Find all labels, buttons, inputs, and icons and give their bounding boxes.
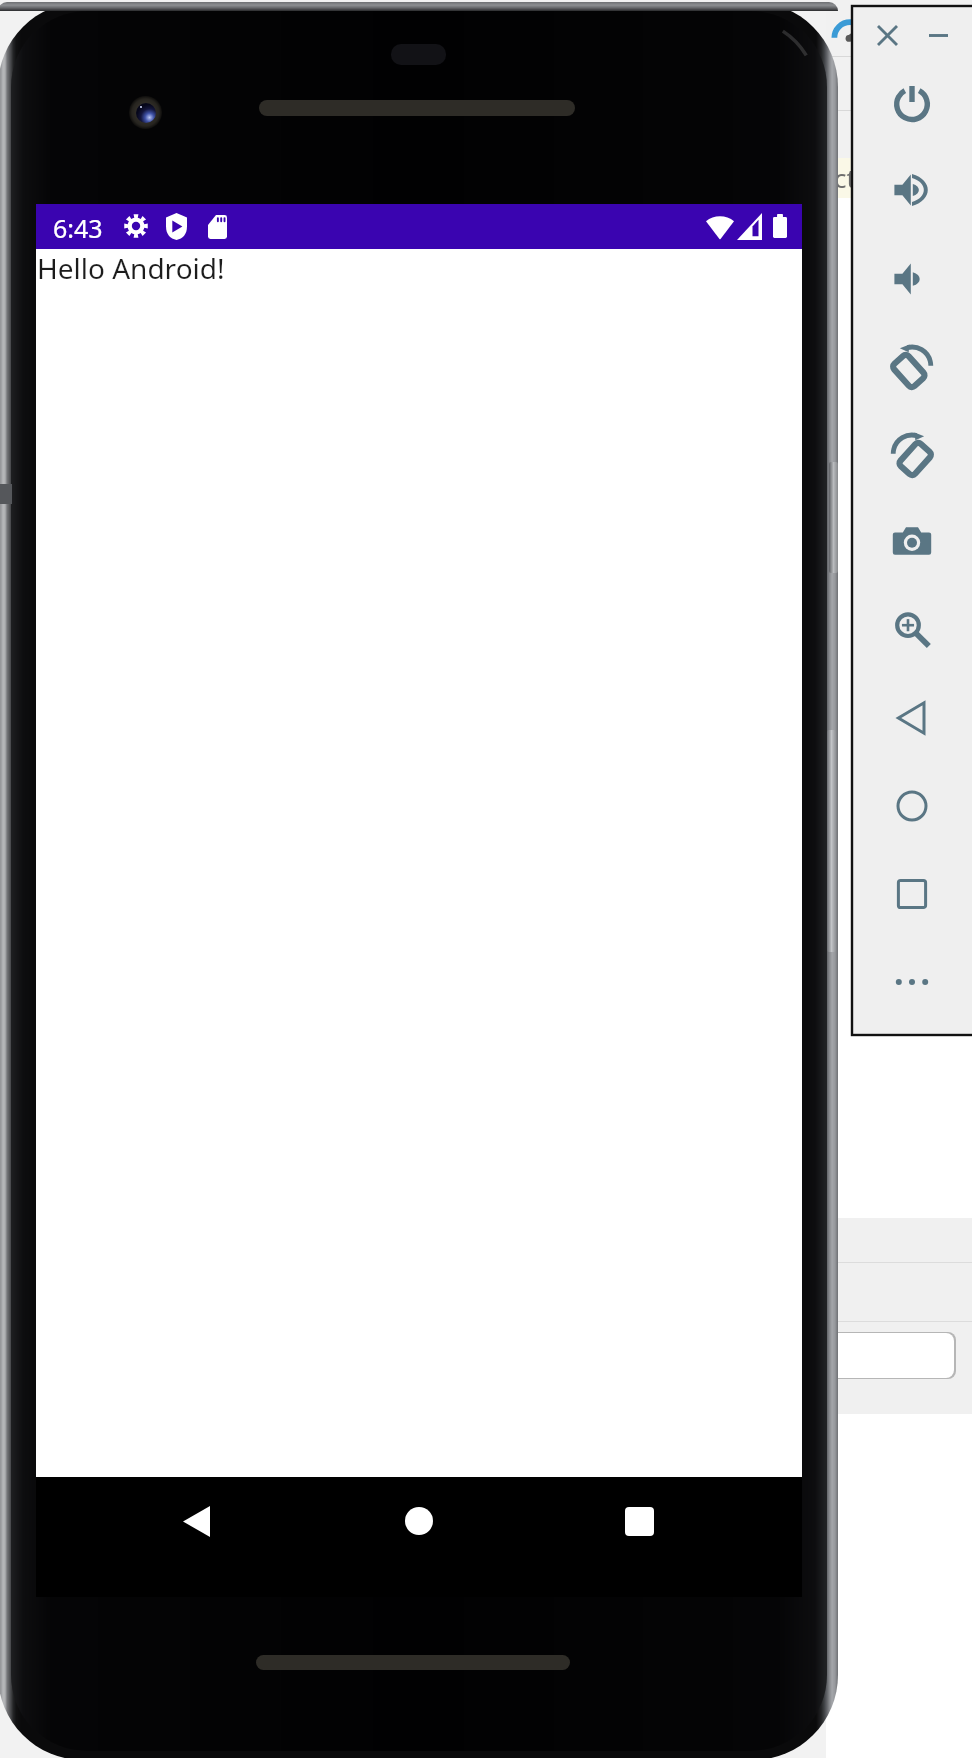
- other: SD card: [208, 215, 227, 239]
- button[interactable]: Home: [868, 777, 956, 835]
- staticText: Hello Android!: [37, 249, 225, 287]
- button[interactable]: Rotate right: [868, 426, 956, 484]
- button[interactable]: Power: [868, 73, 956, 131]
- other: Wi-Fi: [706, 214, 734, 239]
- other: Protected by Play Protect: [166, 213, 187, 240]
- button[interactable]: Rotate left: [868, 338, 956, 396]
- button[interactable]: Back: [868, 689, 956, 747]
- button[interactable]: Overview: [868, 865, 956, 923]
- button[interactable]: Volume down: [868, 250, 956, 308]
- button[interactable]: Back: [141, 1477, 251, 1565]
- button[interactable]: Volume up: [868, 161, 956, 219]
- button[interactable]: More: [868, 953, 956, 1011]
- other: Mobile signal: [737, 213, 762, 240]
- button[interactable]: Minimize: [918, 15, 958, 55]
- other: Settings: [124, 214, 148, 238]
- button[interactable]: Home: [364, 1477, 474, 1565]
- staticText: ct: [834, 160, 856, 195]
- other: Battery: [773, 214, 787, 238]
- button[interactable]: Close: [867, 15, 907, 55]
- button[interactable]: Recent apps: [584, 1477, 694, 1565]
- staticText: 6:43: [53, 211, 103, 245]
- button[interactable]: Take screenshot: [868, 513, 956, 571]
- button[interactable]: Zoom: [868, 601, 956, 659]
